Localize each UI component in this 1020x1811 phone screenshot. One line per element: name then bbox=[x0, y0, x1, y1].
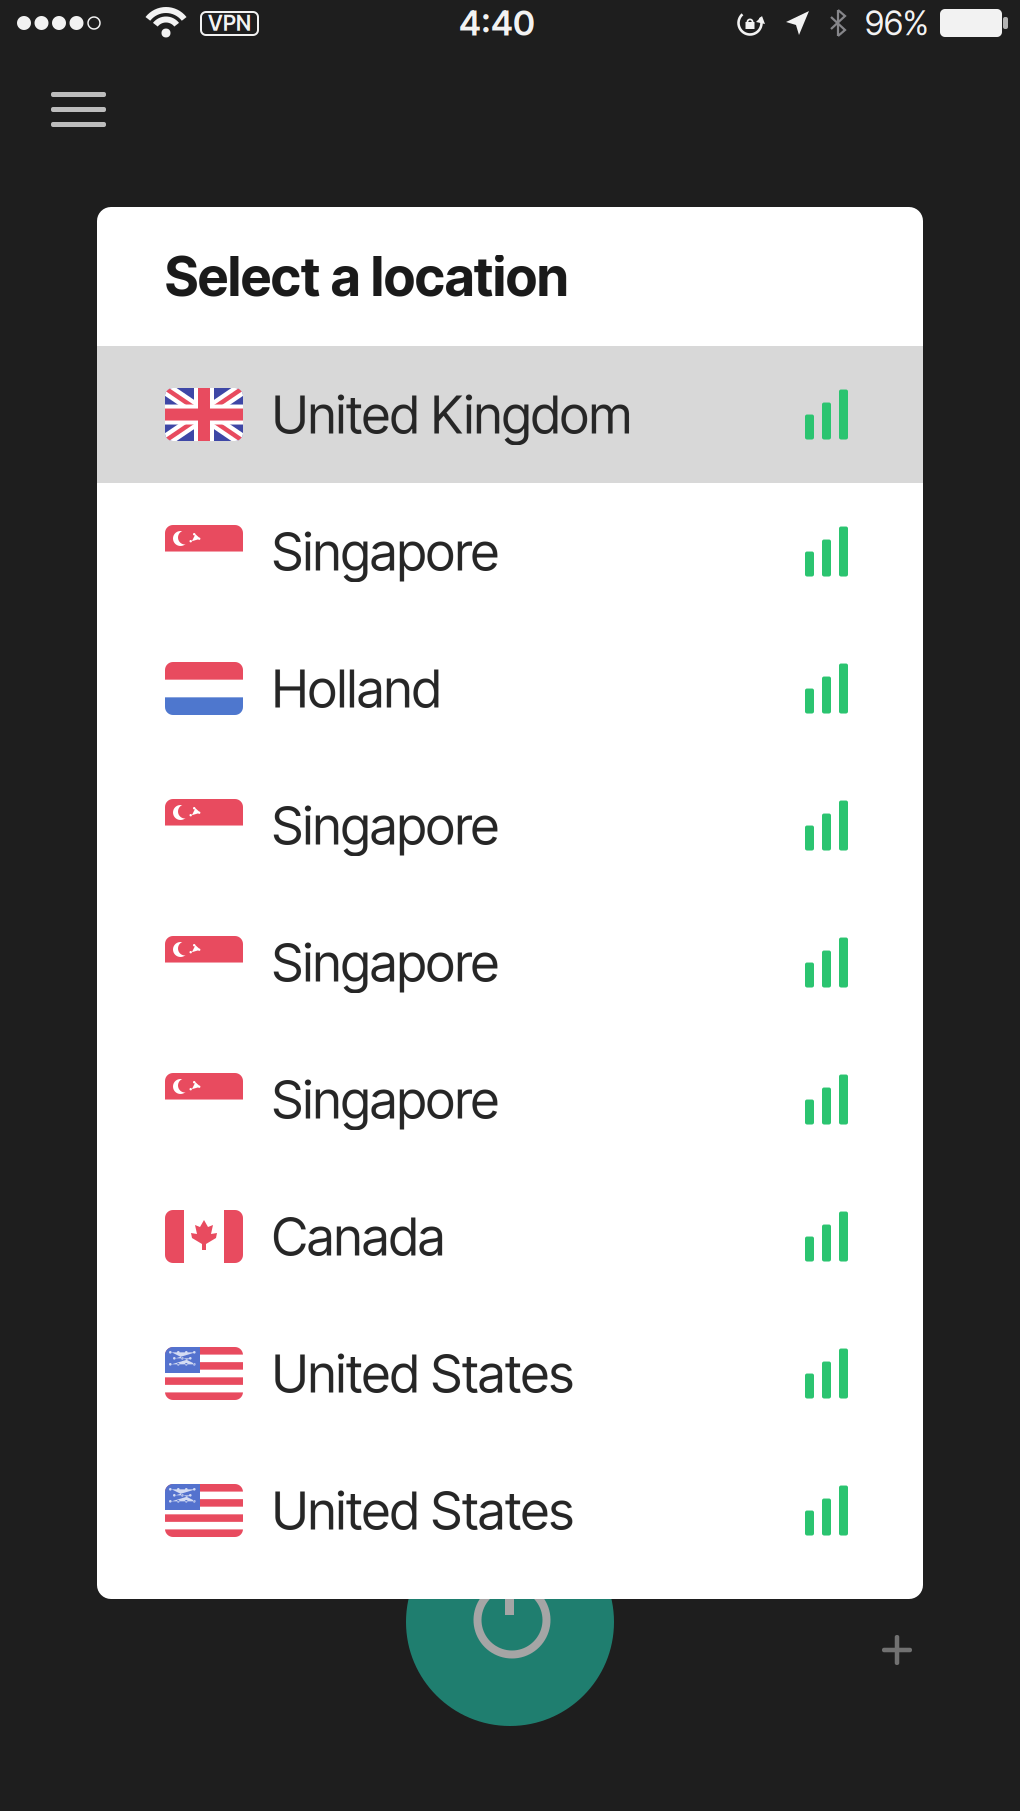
button[interactable]: Singapore bbox=[97, 757, 923, 894]
button[interactable] bbox=[406, 1518, 614, 1726]
staticText: Canada bbox=[272, 1206, 445, 1267]
staticText: United States bbox=[272, 1343, 574, 1404]
staticText: 4:40 bbox=[459, 3, 535, 43]
staticText: United States bbox=[272, 1480, 574, 1541]
button[interactable]: United States bbox=[97, 1442, 923, 1579]
staticText: 96% bbox=[865, 3, 929, 43]
button[interactable] bbox=[51, 92, 106, 127]
staticText: Singapore bbox=[272, 932, 499, 993]
staticText: United Kingdom bbox=[272, 384, 632, 445]
button[interactable]: Canada bbox=[97, 1168, 923, 1305]
staticText: Singapore bbox=[272, 521, 499, 582]
button[interactable]: Singapore bbox=[97, 894, 923, 1031]
button[interactable]: Singapore bbox=[97, 1031, 923, 1168]
button[interactable]: Singapore bbox=[97, 483, 923, 620]
button[interactable]: United Kingdom bbox=[97, 346, 923, 483]
button[interactable]: Holland bbox=[97, 620, 923, 757]
staticText: Singapore bbox=[272, 1069, 499, 1130]
button[interactable]: United States bbox=[97, 1305, 923, 1442]
staticText: Singapore bbox=[272, 795, 499, 856]
staticText: Select a location bbox=[165, 245, 569, 308]
button[interactable] bbox=[882, 1635, 912, 1665]
staticText: VPN bbox=[208, 10, 251, 36]
staticText: Holland bbox=[272, 658, 441, 719]
